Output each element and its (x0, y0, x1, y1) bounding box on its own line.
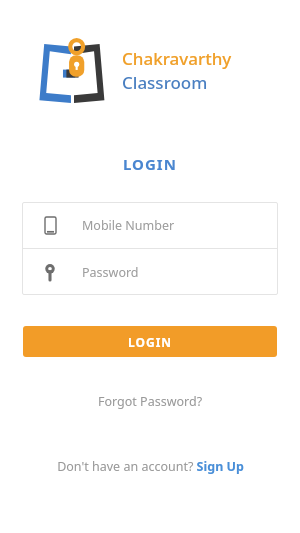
staticText: Mobile Number (82, 217, 175, 234)
staticText: LOGIN (123, 154, 177, 174)
staticText: Don't have an account? Sign Up (57, 458, 244, 475)
button[interactable]: LOGIN (23, 326, 277, 357)
button[interactable]: Forgot Password? (90, 390, 211, 413)
staticText: Chakravarthy (122, 47, 232, 70)
button[interactable]: Mobile Number (22, 202, 278, 248)
button[interactable]: Don't have an account? Sign Up (49, 455, 252, 478)
staticText: Forgot Password? (98, 393, 203, 410)
staticText: Classroom (122, 71, 208, 94)
staticText: Password (82, 264, 139, 281)
button[interactable]: Password (22, 249, 278, 295)
staticText: LOGIN (128, 334, 173, 350)
